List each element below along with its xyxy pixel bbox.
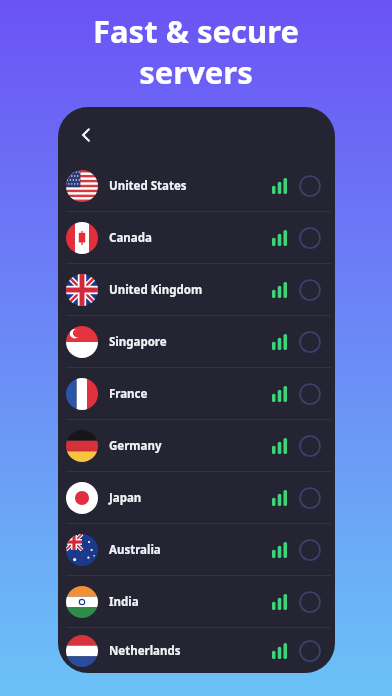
staticText: India [109,594,139,610]
staticText: Canada [109,230,152,246]
button[interactable]: Select Germany [297,433,323,459]
button[interactable]: Select United Kingdom [297,277,323,303]
button[interactable]: Japan [58,472,335,523]
button[interactable]: Select France [297,381,323,407]
button[interactable]: Germany [58,420,335,471]
button[interactable]: Select Singapore [297,329,323,355]
staticText: Fast & secure servers [0,10,392,93]
button[interactable]: Select Australia [297,537,323,563]
staticText: United States [109,178,187,194]
staticText: Germany [109,438,162,454]
staticText: Australia [109,542,161,558]
staticText: Singapore [109,334,167,350]
staticText: United Kingdom [109,282,203,298]
button[interactable]: India [58,576,335,627]
button[interactable]: Select Canada [297,225,323,251]
button[interactable]: Singapore [58,316,335,367]
button[interactable]: Select Netherlands [297,638,323,664]
staticText: France [109,386,148,402]
staticText: Netherlands [109,643,181,659]
button[interactable]: Netherlands [58,628,335,673]
button[interactable]: Select India [297,589,323,615]
button[interactable]: Select Japan [297,485,323,511]
button[interactable]: Australia [58,524,335,575]
button[interactable]: United Kingdom [58,264,335,315]
button[interactable]: France [58,368,335,419]
button[interactable]: United States [58,160,335,211]
button[interactable]: Back [68,117,104,153]
staticText: Japan [109,490,142,506]
button[interactable]: Select United States [297,173,323,199]
button[interactable]: Canada [58,212,335,263]
